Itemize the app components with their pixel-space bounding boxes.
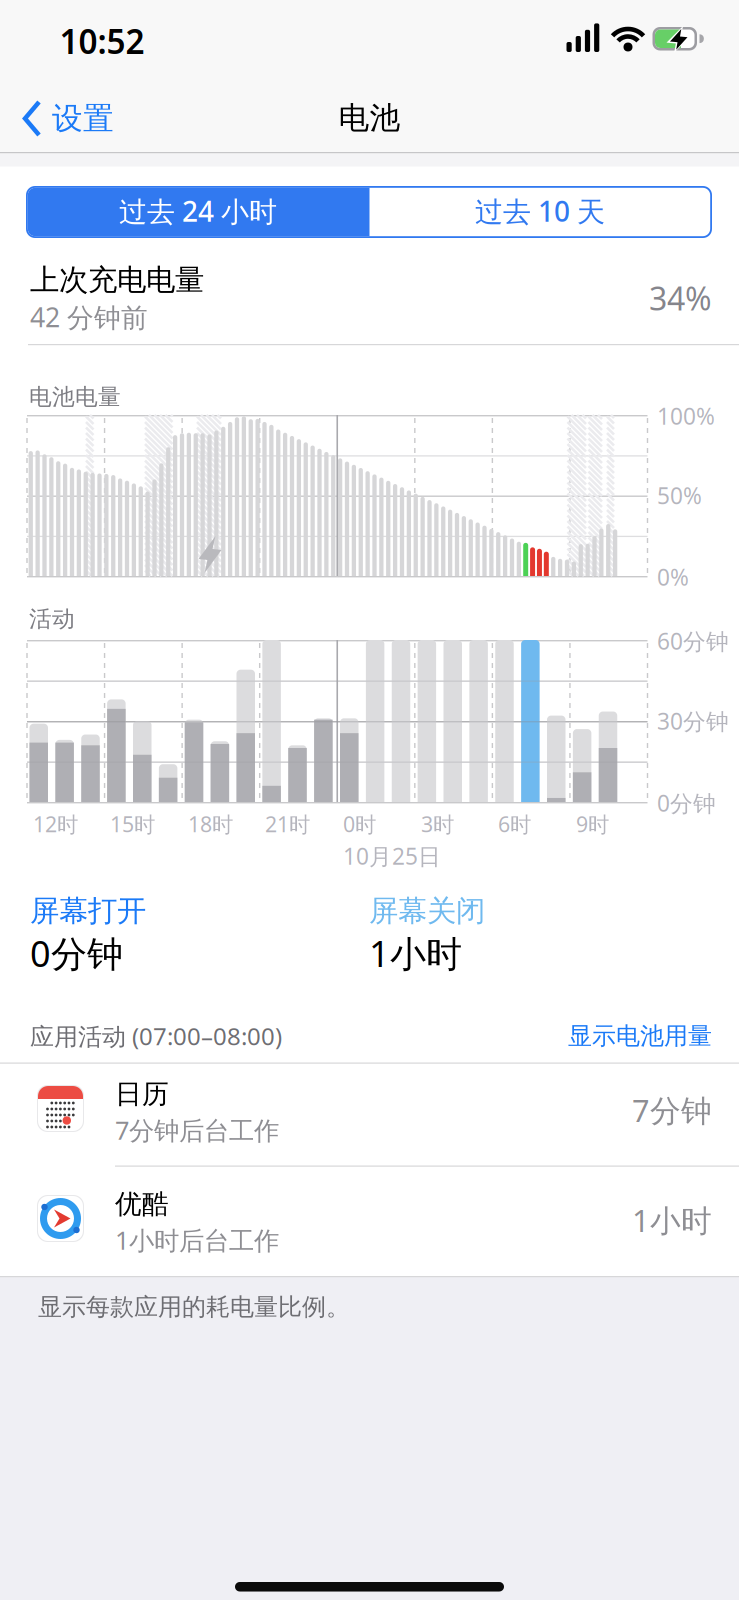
staticText: 设置 xyxy=(52,100,114,137)
staticText: 显示电池用量 xyxy=(568,1021,712,1051)
staticText: 30分钟 xyxy=(657,706,729,736)
staticText: 100% xyxy=(657,401,715,431)
staticText: 3时 xyxy=(421,810,454,838)
staticText: 优酷 xyxy=(115,1188,169,1220)
staticText: 0% xyxy=(657,562,689,592)
staticText: 12时 xyxy=(33,810,78,838)
staticText: 屏幕关闭 xyxy=(369,893,485,929)
staticText: 0分钟 xyxy=(30,929,123,977)
staticText: 0分钟 xyxy=(657,788,716,818)
staticText: 过去 10 天 xyxy=(475,192,605,230)
staticText: 6时 xyxy=(498,810,531,838)
staticText: 34% xyxy=(649,277,712,319)
staticText: 21时 xyxy=(265,810,310,838)
staticText: 9时 xyxy=(576,810,609,838)
staticText: 18时 xyxy=(188,810,233,838)
staticText: 1小时 xyxy=(632,1200,712,1240)
staticText: 0时 xyxy=(343,810,376,838)
staticText: 60分钟 xyxy=(657,626,729,656)
staticText: 活动 xyxy=(29,605,75,633)
staticText: 电池电量 xyxy=(29,383,121,411)
staticText: 1小时后台工作 xyxy=(115,1223,279,1257)
staticText: 显示每款应用的耗电量比例。 xyxy=(38,1292,350,1322)
staticText: 7分钟 xyxy=(632,1090,712,1130)
staticText: 7分钟后台工作 xyxy=(115,1113,279,1147)
staticText: 上次充电电量 xyxy=(30,262,204,298)
staticText: 10月25日 xyxy=(343,841,441,871)
staticText: 15时 xyxy=(110,810,155,838)
staticText: 日历 xyxy=(115,1078,169,1110)
staticText: 1小时 xyxy=(369,929,462,977)
staticText: 过去 24 小时 xyxy=(119,192,277,230)
staticText: 42 分钟前 xyxy=(30,299,148,335)
staticText: 50% xyxy=(657,480,702,510)
staticText: 电池 xyxy=(338,99,400,137)
staticText: 屏幕打开 xyxy=(30,893,146,929)
staticText: 10:52 xyxy=(59,19,144,63)
staticText: 应用活动 (07:00–08:00) xyxy=(30,1020,282,1052)
